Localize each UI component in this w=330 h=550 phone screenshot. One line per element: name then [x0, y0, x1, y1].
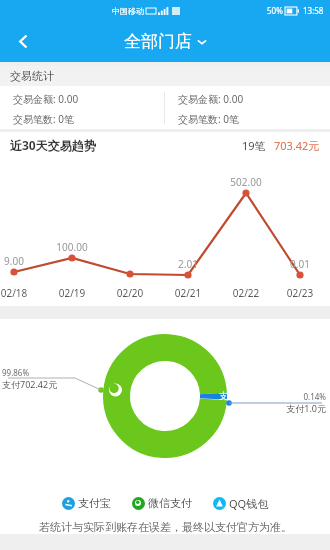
staticText: 0.14% [303, 391, 326, 402]
staticText: 02/21 [166, 286, 210, 300]
staticText: 交易金额: 0.00 [178, 92, 244, 106]
staticText: 若统计与实际到账存在误差，最终以支付官方为准。 [39, 520, 292, 534]
staticText: 2.01 [166, 257, 210, 271]
staticText: 交易笔数: 0笔 [13, 112, 74, 126]
staticText: 9.00 [0, 254, 36, 268]
staticText: 02/18 [0, 286, 36, 300]
staticText: 50% [267, 5, 283, 16]
staticText: 支付1.0元 [286, 402, 326, 414]
staticText: 交易笔数: 0笔 [178, 112, 239, 126]
staticText: 02/20 [108, 286, 152, 300]
staticText: 支 [219, 390, 228, 401]
staticText: 支付702.42元 [2, 378, 58, 390]
button[interactable]: 全部门店 [120, 27, 211, 56]
staticText: 近30天交易趋势 [10, 137, 96, 153]
button[interactable]: 支付宝 [60, 494, 113, 512]
button[interactable]: 微信支付 [130, 494, 194, 512]
staticText: 支付宝 [78, 496, 111, 510]
staticText: 0.01 [278, 257, 322, 271]
staticText: 19笔 [242, 138, 266, 153]
staticText: 502.00 [224, 175, 268, 189]
staticText: 02/19 [50, 286, 94, 300]
staticText: 703.42元 [274, 138, 320, 153]
staticText: 交易金额: 0.00 [13, 92, 79, 106]
staticText: 13:58 [303, 5, 324, 16]
staticText: 中国移动 [112, 6, 144, 16]
button[interactable]: Back [6, 24, 40, 58]
staticText: 全部门店 [124, 31, 192, 52]
staticText: 交易统计 [10, 69, 54, 83]
button[interactable]: QQ钱包 [211, 494, 271, 513]
staticText: 99.86% [2, 367, 30, 378]
staticText: 100.00 [50, 240, 94, 254]
staticText: 02/22 [224, 286, 268, 300]
staticText: QQ钱包 [229, 496, 269, 511]
staticText: 微信支付 [148, 496, 192, 510]
staticText: 02/23 [278, 286, 322, 300]
